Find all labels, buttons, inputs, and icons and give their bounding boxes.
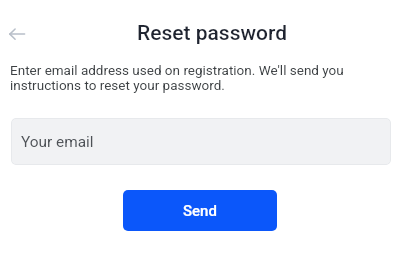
staticText: Enter email address used on registration… (10, 62, 355, 93)
button[interactable]: Back (0, 14, 34, 54)
button[interactable]: Send (123, 190, 277, 231)
staticText: Reset password (137, 21, 288, 46)
staticText: Your email (21, 133, 94, 151)
button[interactable]: Your email (11, 118, 391, 165)
staticText: Send (183, 202, 217, 220)
